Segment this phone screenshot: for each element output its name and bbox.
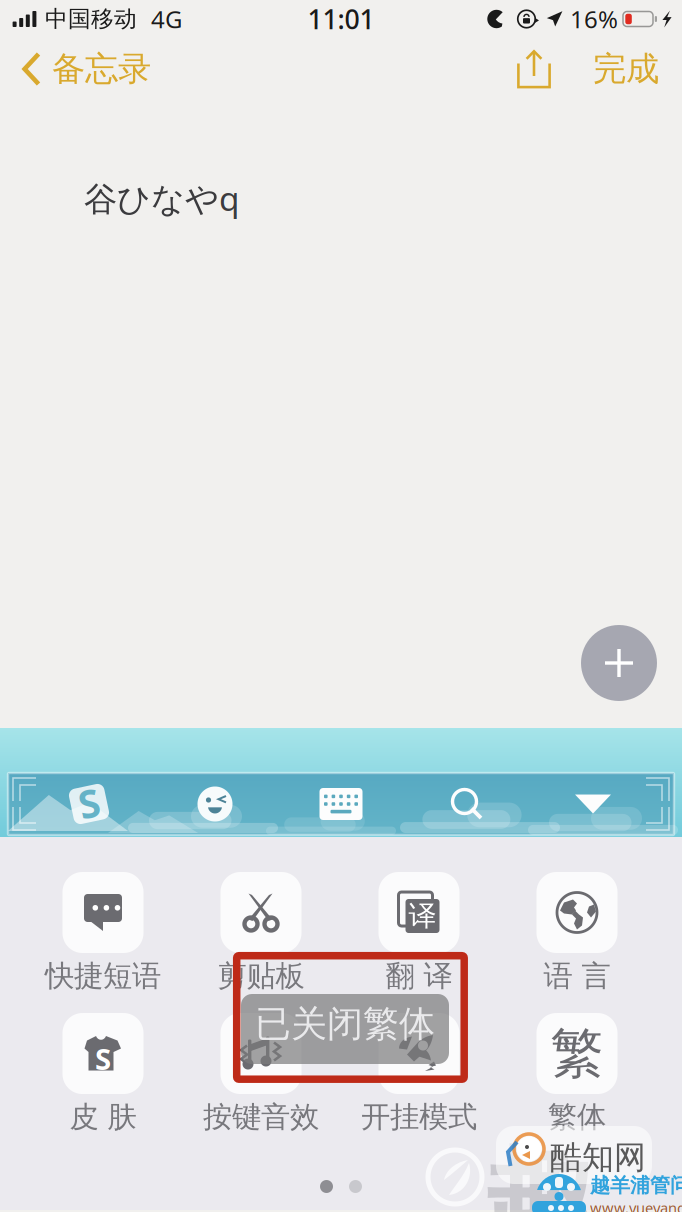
staticText: www.yueyangbang.com bbox=[590, 1198, 682, 1212]
button[interactable]: 搜索 bbox=[404, 786, 530, 822]
staticText: 趣 bbox=[480, 1132, 597, 1212]
staticText: 语 言 bbox=[543, 958, 610, 994]
button[interactable]: 分享 bbox=[501, 38, 567, 100]
staticText: 11:01 bbox=[307, 1, 374, 37]
button[interactable]: 新建 bbox=[581, 625, 657, 701]
staticText: 16% bbox=[570, 3, 618, 35]
staticText: 快捷短语 bbox=[45, 958, 161, 994]
staticText: S bbox=[78, 777, 99, 829]
staticText: 剪贴板 bbox=[217, 958, 304, 994]
staticText: 4G bbox=[151, 3, 182, 35]
button[interactable]: 完成 bbox=[567, 38, 678, 100]
button[interactable]: 开挂模式 bbox=[340, 1013, 498, 1135]
staticText: 开挂模式 bbox=[361, 1099, 477, 1135]
staticText: 繁 bbox=[550, 1021, 603, 1086]
button[interactable]: 表情 bbox=[152, 784, 278, 824]
button[interactable]: 译 bbox=[340, 872, 498, 994]
button[interactable]: 快捷短语 bbox=[24, 872, 182, 994]
button[interactable]: 收起键盘 bbox=[530, 794, 656, 813]
staticText: 繁体 bbox=[548, 1099, 606, 1135]
button[interactable]: 按键音效 bbox=[182, 1013, 340, 1135]
staticText: 皮 肤 bbox=[69, 1099, 136, 1135]
staticText: 越羊浦管问网 bbox=[590, 1173, 682, 1198]
button[interactable]: 搜狗输入法 bbox=[26, 782, 152, 826]
staticText: 谷ひなやq bbox=[84, 176, 240, 220]
staticText: 已关闭繁体 bbox=[255, 1002, 435, 1046]
staticText: 酷知网 bbox=[550, 1138, 646, 1177]
button[interactable]: S bbox=[24, 1013, 182, 1135]
staticText: 按键音效 bbox=[203, 1099, 319, 1135]
button[interactable]: 语 言 bbox=[498, 872, 656, 994]
button[interactable]: 键盘 bbox=[278, 787, 404, 821]
staticText: 翻 译 bbox=[385, 958, 452, 994]
staticText: S bbox=[95, 1039, 111, 1078]
button[interactable]: 繁 bbox=[498, 1013, 656, 1135]
staticText: 中国移动 bbox=[45, 5, 137, 33]
staticText: 备忘录 bbox=[52, 48, 151, 89]
button[interactable]: 剪贴板 bbox=[182, 872, 340, 994]
staticText: 完成 bbox=[593, 48, 659, 89]
button[interactable]: 备忘录 bbox=[4, 38, 169, 100]
staticText: 译 bbox=[408, 899, 436, 933]
